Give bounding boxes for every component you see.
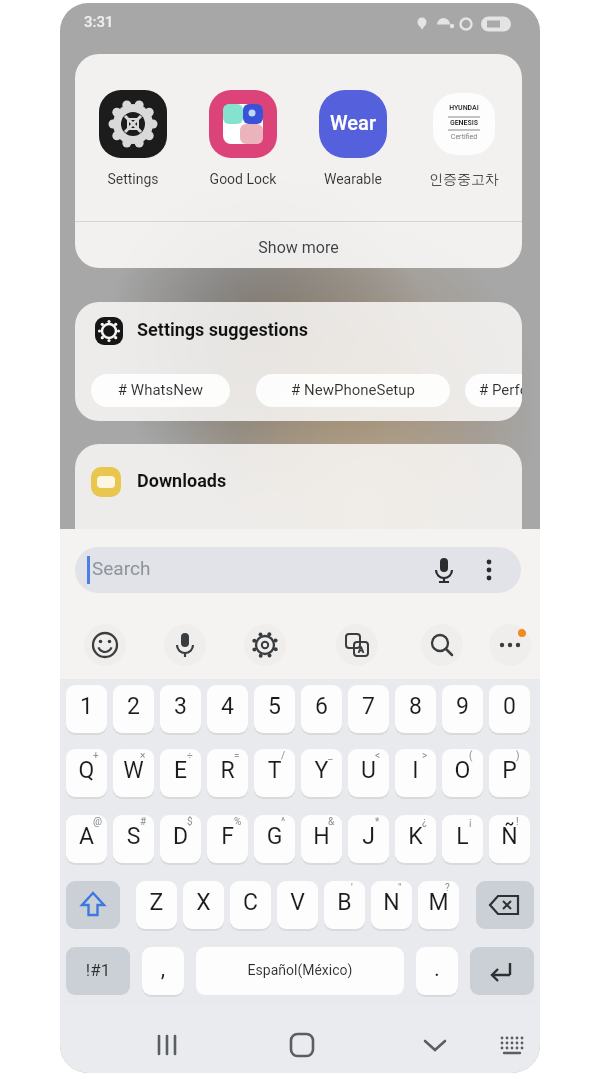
staticText: R	[207, 757, 248, 784]
button[interactable]: Y	[301, 749, 342, 797]
button[interactable]: O	[442, 749, 483, 797]
button[interactable]: G	[254, 815, 295, 863]
button[interactable]	[280, 1023, 324, 1067]
staticText: ^	[281, 816, 286, 828]
staticText: HYUNDAI	[433, 104, 495, 112]
button[interactable]	[84, 624, 126, 666]
button[interactable]: 1	[66, 685, 107, 733]
button[interactable]: 0	[489, 685, 530, 733]
button[interactable]: 6	[301, 685, 342, 733]
staticText: %	[234, 816, 242, 828]
button[interactable]: U	[348, 749, 389, 797]
button[interactable]: .	[416, 947, 458, 995]
button[interactable]: H	[301, 815, 342, 863]
staticText: 인증중고차	[427, 171, 501, 189]
staticText: ¡	[469, 816, 472, 828]
staticText: +	[93, 750, 99, 762]
staticText: G	[254, 823, 295, 850]
staticText: E	[160, 757, 201, 784]
staticText: Show more	[75, 238, 522, 257]
staticText: F	[207, 823, 248, 850]
button[interactable]: E	[160, 749, 201, 797]
button[interactable]: HYUNDAI	[433, 93, 495, 155]
button[interactable]: P	[489, 749, 530, 797]
button[interactable]: Search	[75, 547, 521, 593]
button[interactable]: # NewPhoneSetup	[256, 374, 450, 407]
staticText: N	[371, 889, 412, 916]
staticText: 2	[113, 693, 154, 720]
staticText: $	[187, 816, 193, 828]
button[interactable]: S	[113, 815, 154, 863]
button[interactable]	[209, 90, 277, 158]
staticText: W	[113, 757, 154, 784]
button[interactable]: X	[183, 881, 224, 929]
button[interactable]: I	[395, 749, 436, 797]
button[interactable]	[164, 624, 206, 666]
staticText: Downloads	[137, 470, 227, 491]
button[interactable]: B	[324, 881, 365, 929]
staticText: Settings suggestions	[137, 319, 309, 340]
staticText: GENESIS	[433, 119, 495, 127]
button[interactable]: Z	[136, 881, 177, 929]
button[interactable]	[99, 90, 167, 158]
button[interactable]: T	[254, 749, 295, 797]
button[interactable]: Q	[66, 749, 107, 797]
button[interactable]: Ñ	[489, 815, 530, 863]
button[interactable]	[244, 624, 286, 666]
staticText: .	[416, 956, 458, 982]
button[interactable]	[489, 624, 531, 666]
staticText: C	[230, 889, 271, 916]
staticText: P	[489, 757, 530, 784]
staticText: 3	[160, 693, 201, 720]
button[interactable]: M	[418, 881, 459, 929]
button[interactable]	[336, 624, 378, 666]
button[interactable]: Wear	[319, 90, 387, 158]
button[interactable]: 9	[442, 685, 483, 733]
button[interactable]: W	[113, 749, 154, 797]
button[interactable]: N	[371, 881, 412, 929]
button[interactable]: !#1	[66, 947, 130, 995]
button[interactable]: J	[348, 815, 389, 863]
button[interactable]: R	[207, 749, 248, 797]
button[interactable]: ,	[142, 947, 184, 995]
button[interactable]: 2	[113, 685, 154, 733]
button[interactable]: 7	[348, 685, 389, 733]
staticText: Certified	[433, 133, 495, 141]
staticText: Ñ	[489, 823, 530, 850]
staticText: Wearable	[313, 171, 393, 187]
button[interactable]: 5	[254, 685, 295, 733]
button[interactable]: # Performance	[465, 374, 522, 407]
staticText: B	[324, 889, 365, 916]
button[interactable]: K	[395, 815, 436, 863]
staticText: "	[398, 882, 402, 894]
button[interactable]: 3	[160, 685, 201, 733]
staticText: !	[516, 816, 519, 828]
button[interactable]	[490, 1023, 534, 1067]
staticText: H	[301, 823, 342, 850]
staticText: ¿	[422, 816, 427, 828]
button[interactable]	[66, 881, 120, 929]
button[interactable]: # WhatsNew	[91, 374, 230, 407]
button[interactable]: 4	[207, 685, 248, 733]
button[interactable]	[413, 1023, 457, 1067]
staticText: # WhatsNew	[91, 381, 230, 399]
button[interactable]: V	[277, 881, 318, 929]
staticText: L	[442, 823, 483, 850]
button[interactable]	[470, 947, 534, 995]
button[interactable]: A	[66, 815, 107, 863]
staticText: =	[234, 750, 240, 762]
button[interactable]: L	[442, 815, 483, 863]
button[interactable]: Español(México)	[196, 947, 404, 995]
button[interactable]: 8	[395, 685, 436, 733]
button[interactable]: C	[230, 881, 271, 929]
button[interactable]	[476, 881, 534, 929]
button[interactable]	[145, 1023, 189, 1067]
staticText: Search	[92, 557, 151, 579]
staticText: Settings	[99, 171, 167, 187]
staticText: !#1	[66, 960, 130, 980]
button[interactable]: Show more	[75, 222, 522, 268]
button[interactable]: D	[160, 815, 201, 863]
button[interactable]: F	[207, 815, 248, 863]
staticText: # Performance	[479, 381, 522, 399]
button[interactable]	[421, 624, 463, 666]
